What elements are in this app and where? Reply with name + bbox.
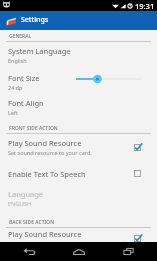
staticText: Play Sound Resource: [8, 229, 82, 239]
button[interactable]: Settings: [0, 11, 157, 30]
staticText: Set sound resource to your card.: [8, 240, 92, 247]
staticText: Font Align: [8, 98, 44, 108]
button[interactable]: Recent apps: [108, 242, 148, 261]
staticText: English: [8, 57, 27, 64]
staticText: ENGLISH: [8, 200, 32, 207]
staticText: Font Size: [8, 73, 40, 83]
button[interactable]: Font Size: [0, 70, 157, 94]
staticText: 19:31: [135, 1, 155, 11]
staticText: Language: [8, 189, 44, 199]
button[interactable]: System Language: [0, 43, 157, 67]
staticText: Settings: [21, 15, 49, 25]
staticText: GENERAL: [9, 33, 32, 40]
button[interactable]: Play Sound Resource: [0, 226, 157, 250]
button[interactable]: Back: [9, 242, 49, 261]
staticText: Enable Text To Speech: [8, 169, 86, 179]
staticText: Set sound resource to your card.: [8, 149, 92, 156]
button[interactable]: Play Sound Resource: [0, 135, 157, 159]
staticText: FRONT SIDE ACTION: [9, 125, 58, 132]
other: Play Sound Resource: [134, 235, 141, 242]
button[interactable]: Enable Text To Speech: [0, 166, 157, 190]
button[interactable]: Language: [0, 186, 157, 210]
other: Enable Text To Speech: [134, 170, 141, 177]
staticText: System Language: [8, 46, 71, 56]
button[interactable]: Home: [59, 242, 99, 261]
staticText: BACK SIDE ACTION: [9, 219, 55, 226]
button[interactable]: Font Align: [0, 95, 157, 119]
other: Play Sound Resource: [134, 144, 141, 151]
staticText: Play Sound Resource: [8, 138, 82, 148]
staticText: Left: [8, 109, 18, 116]
staticText: 24 dp: [8, 84, 23, 91]
